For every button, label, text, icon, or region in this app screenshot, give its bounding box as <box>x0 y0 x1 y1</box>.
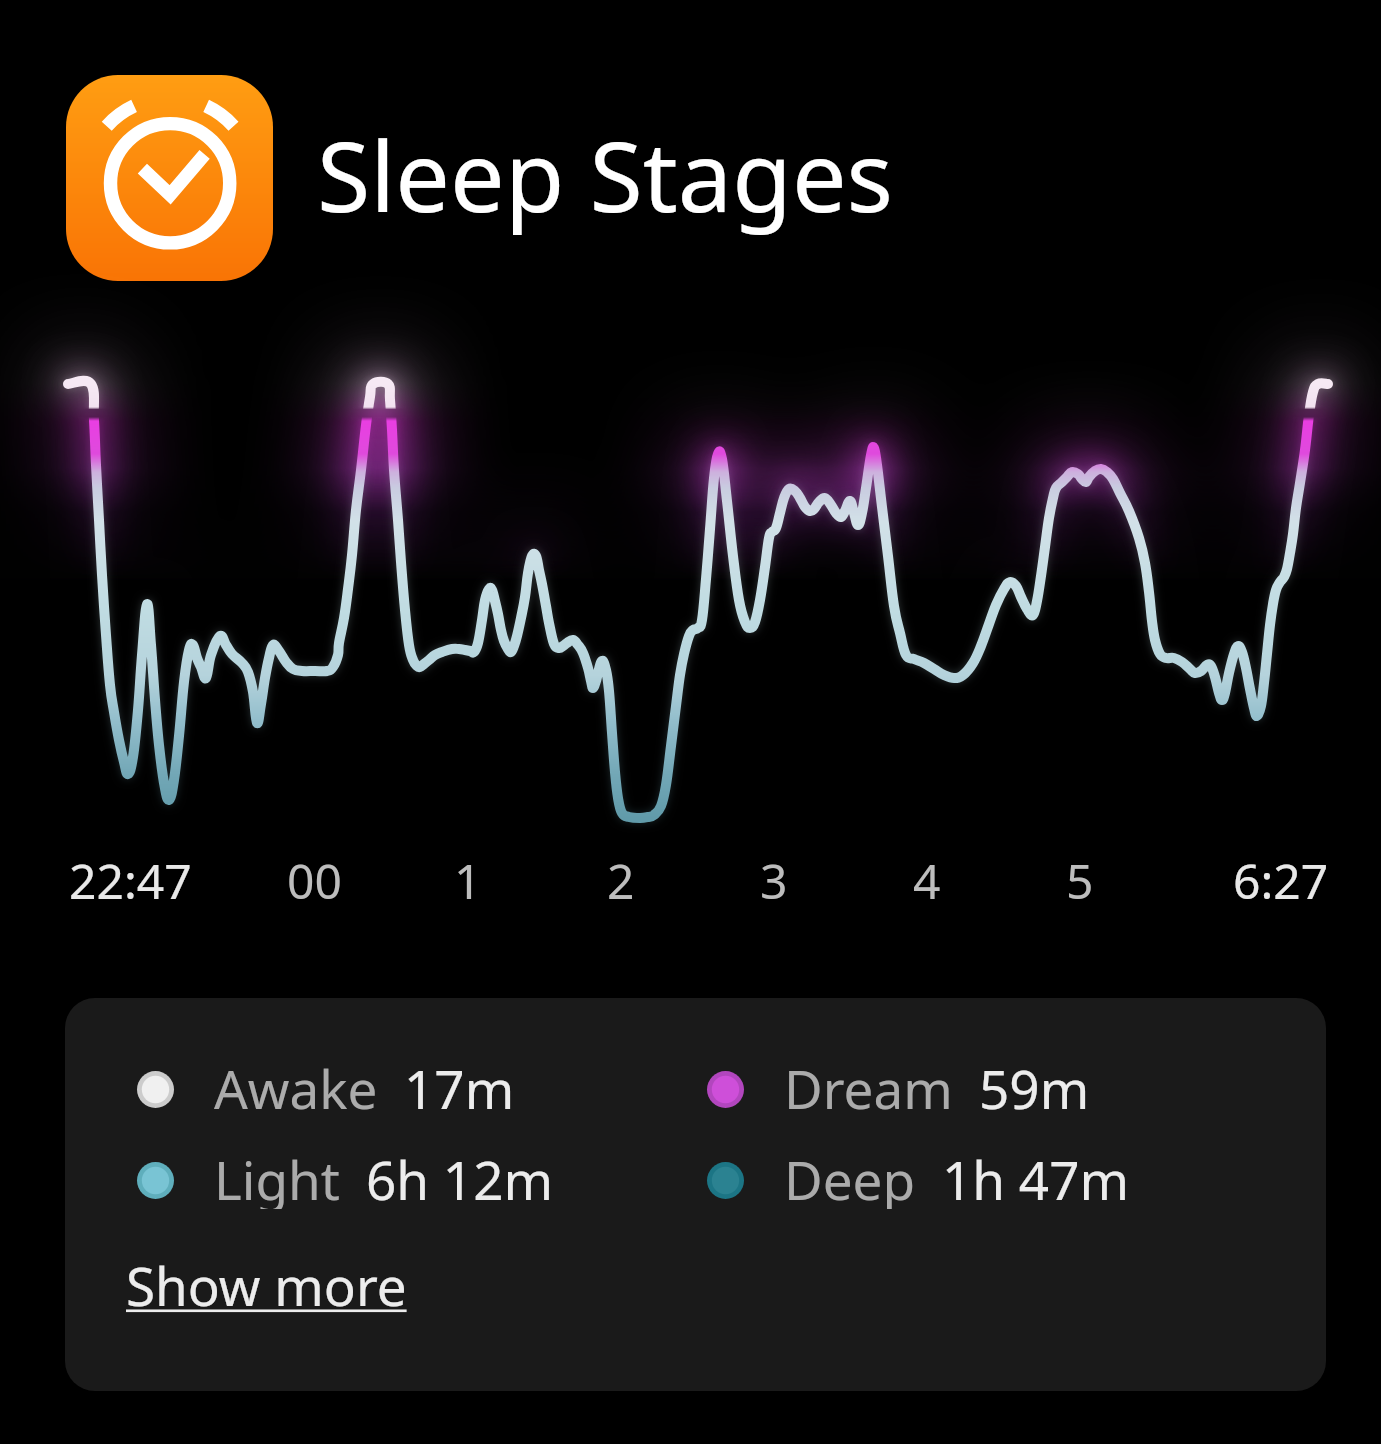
staticText: 59m <box>979 1052 1090 1118</box>
staticText: 6h 12m <box>366 1143 554 1209</box>
staticText: 4 <box>913 848 941 908</box>
staticText: 22:47 <box>69 848 192 908</box>
staticText: Dream <box>784 1052 953 1118</box>
staticText: Awake <box>214 1052 378 1118</box>
staticText: Sleep Stages <box>317 108 894 240</box>
staticText: 17m <box>404 1052 515 1118</box>
staticText: 2 <box>607 848 635 908</box>
button[interactable]: Awake <box>65 998 1326 1391</box>
staticText: Deep <box>784 1143 916 1209</box>
staticText: 6:27 <box>1233 848 1329 908</box>
other: Sleep Stages app icon <box>66 75 273 281</box>
staticText: Show more <box>126 1249 407 1321</box>
staticText: 1h 47m <box>942 1143 1130 1209</box>
staticText: Light <box>214 1143 340 1209</box>
staticText: 3 <box>760 848 788 908</box>
staticText: 5 <box>1066 848 1094 908</box>
button[interactable]: Sleep Stages app icon <box>66 75 850 281</box>
staticText: 00 <box>287 848 342 908</box>
staticText: 1 <box>454 848 482 908</box>
button[interactable]: Show more <box>126 1249 407 1321</box>
